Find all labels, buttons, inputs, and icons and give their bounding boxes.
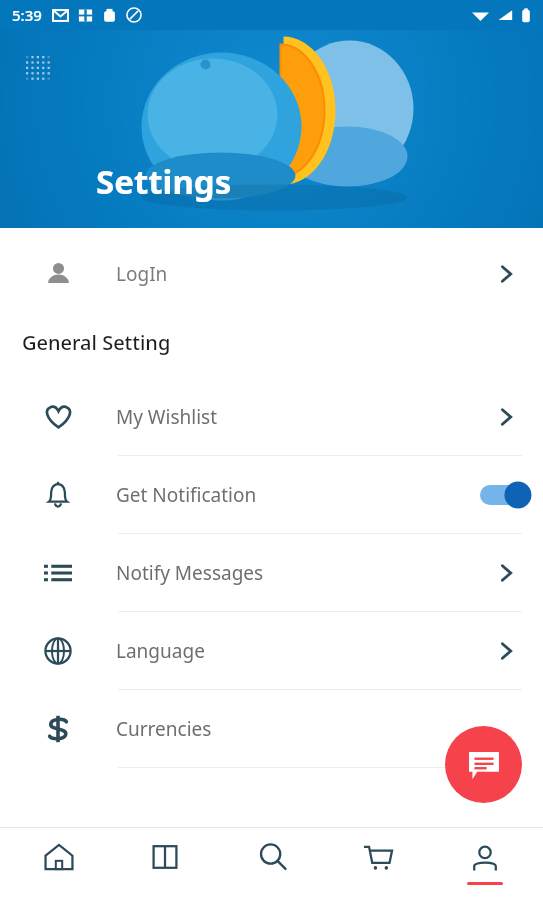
button[interactable]: Currencies [0, 690, 543, 767]
other: Open [493, 261, 519, 287]
button[interactable]: Cart [330, 828, 426, 900]
staticText: Notify Messages [116, 560, 264, 586]
staticText: LogIn [116, 261, 168, 287]
staticText: General Setting [22, 329, 171, 356]
button[interactable]: Get Notification [0, 456, 543, 533]
button[interactable]: Notify Messages [0, 534, 543, 611]
staticText: Settings [96, 159, 232, 204]
button[interactable]: Get Notification toggle [480, 480, 532, 510]
button[interactable]: My Wishlist [0, 378, 543, 455]
other: Open [493, 638, 519, 664]
staticText: 5:39 [12, 5, 42, 25]
other: Open [493, 404, 519, 430]
button[interactable]: LogIn [0, 246, 543, 302]
staticText: Currencies [116, 716, 212, 742]
button[interactable]: Language [0, 612, 543, 689]
other: Open [493, 560, 519, 586]
button[interactable]: Home [11, 828, 107, 900]
staticText: My Wishlist [116, 404, 218, 430]
button[interactable]: Chat [445, 726, 522, 803]
staticText: Get Notification [116, 482, 257, 508]
button[interactable]: Profile [437, 828, 533, 900]
button[interactable]: Catalog [117, 828, 213, 900]
staticText: Language [116, 638, 205, 664]
button[interactable]: Menu [24, 54, 52, 82]
button[interactable]: Search [224, 828, 320, 900]
